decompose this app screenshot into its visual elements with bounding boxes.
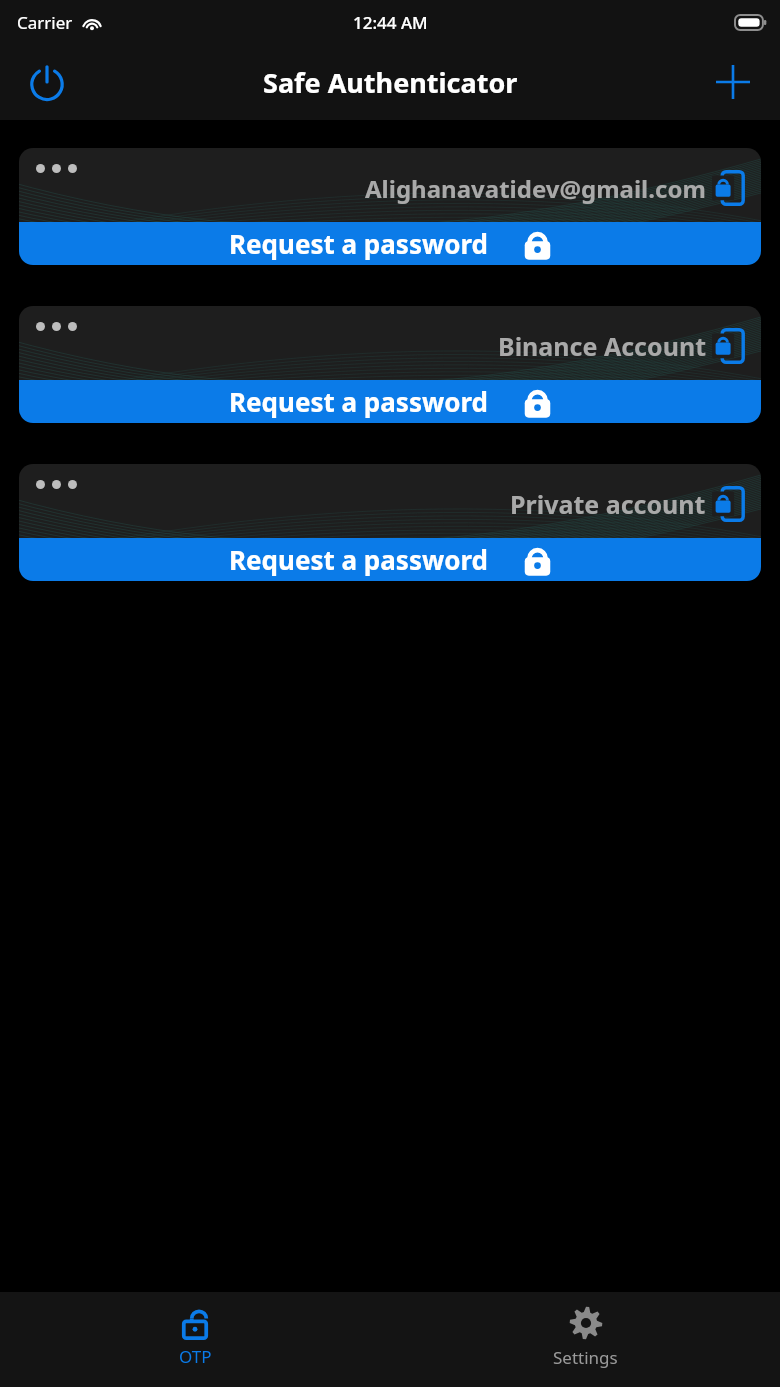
button[interactable]: More options: [32, 318, 81, 335]
button[interactable]: More options: [19, 306, 761, 380]
staticText: OTP: [179, 1345, 212, 1368]
staticText: 12:44 AM: [353, 11, 428, 34]
staticText: Request a password: [229, 384, 489, 419]
button[interactable]: OTP: [0, 1292, 390, 1387]
staticText: Request a password: [229, 542, 489, 577]
button[interactable]: More options: [19, 148, 761, 222]
button[interactable]: More options: [19, 464, 761, 538]
staticText: Settings: [553, 1346, 618, 1369]
button[interactable]: Power: [20, 55, 74, 109]
staticText: Carrier: [17, 11, 73, 34]
button[interactable]: Add account: [706, 55, 760, 109]
button[interactable]: Request a password: [19, 380, 761, 423]
button[interactable]: More options: [32, 476, 81, 493]
staticText: Private account: [510, 487, 706, 521]
button[interactable]: More options: [32, 160, 81, 177]
staticText: Request a password: [229, 226, 489, 261]
staticText: Binance Account: [498, 329, 706, 363]
button[interactable]: Request a password: [19, 222, 761, 265]
button[interactable]: Settings: [390, 1292, 780, 1387]
button[interactable]: Request a password: [19, 538, 761, 581]
staticText: Safe Authenticator: [263, 64, 518, 101]
staticText: Alighanavatidev@gmail.com: [365, 172, 706, 205]
